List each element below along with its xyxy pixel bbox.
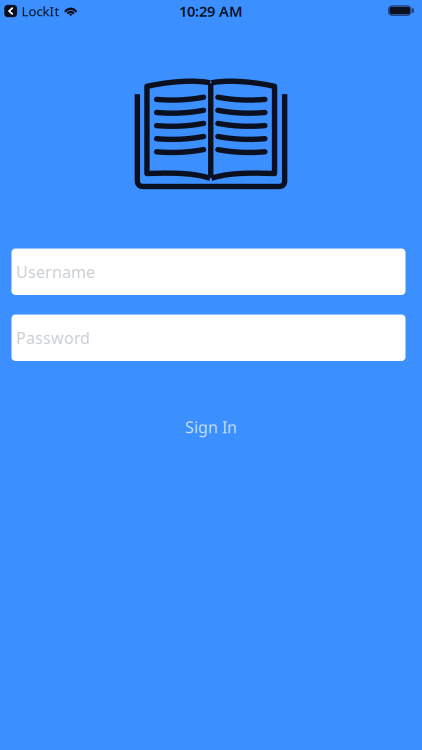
staticText: 10:29 AM (179, 1, 243, 21)
staticText: Username (16, 261, 95, 282)
staticText: LockIt (22, 2, 60, 20)
staticText: Password (16, 327, 90, 348)
button[interactable]: Sign In (0, 412, 422, 442)
staticText: Sign In (185, 416, 237, 438)
button[interactable]: Back to LockIt (0, 0, 63, 21)
